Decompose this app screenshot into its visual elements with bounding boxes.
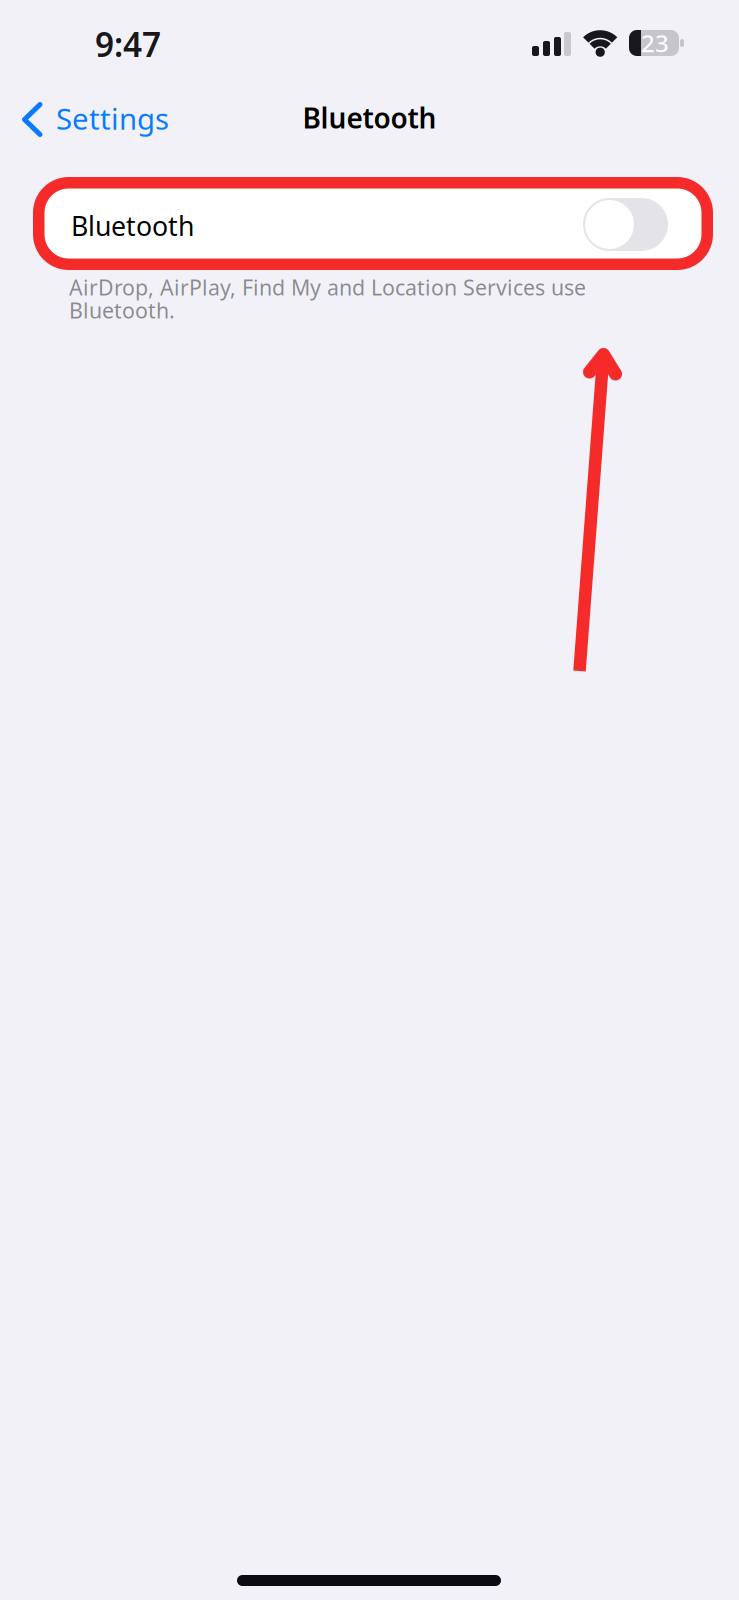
staticText: 9:47 [95, 22, 161, 66]
staticText: 23 [641, 27, 669, 59]
button[interactable]: Back to Settings [0, 91, 185, 149]
staticText: Bluetooth. [69, 296, 175, 324]
staticText: Bluetooth [302, 99, 436, 136]
staticText: AirDrop, AirPlay, Find My and Location S… [69, 273, 586, 301]
button[interactable]: Bluetooth [40, 185, 704, 263]
staticText: Settings [56, 99, 169, 138]
staticText: Bluetooth [71, 208, 194, 243]
